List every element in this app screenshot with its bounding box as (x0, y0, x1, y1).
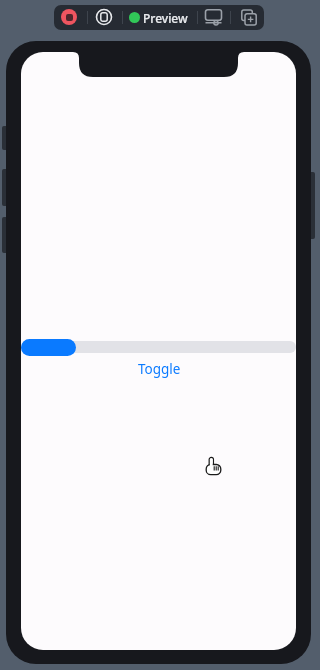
button[interactable] (61, 9, 77, 25)
button[interactable] (96, 9, 112, 25)
button[interactable]: Toggle (59, 359, 259, 379)
staticText: Toggle (138, 360, 181, 378)
staticText: Preview (143, 10, 188, 26)
button[interactable]: Preview (143, 5, 197, 30)
button[interactable] (204, 9, 222, 27)
button[interactable] (240, 9, 258, 27)
